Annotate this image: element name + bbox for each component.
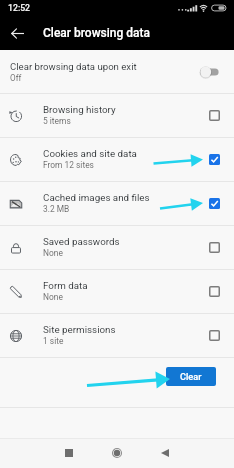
button[interactable]: Back: [3, 19, 31, 47]
staticText: Cached images and files: [43, 192, 150, 203]
staticText: 5 items: [43, 116, 71, 126]
staticText: 1 site: [43, 336, 64, 346]
button[interactable]: Browsing history: [0, 94, 234, 137]
button[interactable]: Cookies and site data: [205, 150, 223, 168]
staticText: Off: [10, 73, 22, 83]
button[interactable]: Saved passwords: [205, 238, 223, 256]
button[interactable]: Clear browsing data upon exit: [0, 50, 234, 93]
staticText: From 12 sites: [43, 160, 94, 170]
staticText: Clear browsing data: [43, 26, 150, 40]
button[interactable]: Browsing history: [205, 106, 223, 124]
staticText: 3.2 MB: [43, 204, 70, 214]
staticText: None: [43, 248, 63, 258]
button[interactable]: Site permissions: [205, 326, 223, 344]
button[interactable]: Recents: [52, 438, 85, 467]
staticText: 12:52: [8, 3, 31, 13]
staticText: Clear: [180, 371, 202, 382]
staticText: Browsing history: [43, 104, 116, 115]
button[interactable]: Form data: [0, 270, 234, 313]
staticText: Cookies and site data: [43, 148, 137, 159]
staticText: None: [43, 292, 63, 302]
button[interactable]: Site permissions: [0, 314, 234, 357]
staticText: Site permissions: [43, 324, 116, 335]
staticText: Saved passwords: [43, 236, 120, 247]
button[interactable]: Cookies and site data: [0, 138, 234, 181]
button[interactable]: Cached images and files: [0, 182, 234, 225]
button[interactable]: Cached images and files: [205, 194, 223, 212]
staticText: Clear browsing data upon exit: [10, 61, 137, 72]
staticText: Form data: [43, 280, 88, 291]
button[interactable]: Home: [100, 438, 133, 467]
button[interactable]: Clear: [166, 367, 216, 386]
button[interactable]: Back: [148, 438, 181, 467]
button[interactable]: Form data: [205, 282, 223, 300]
button[interactable]: Saved passwords: [0, 226, 234, 269]
